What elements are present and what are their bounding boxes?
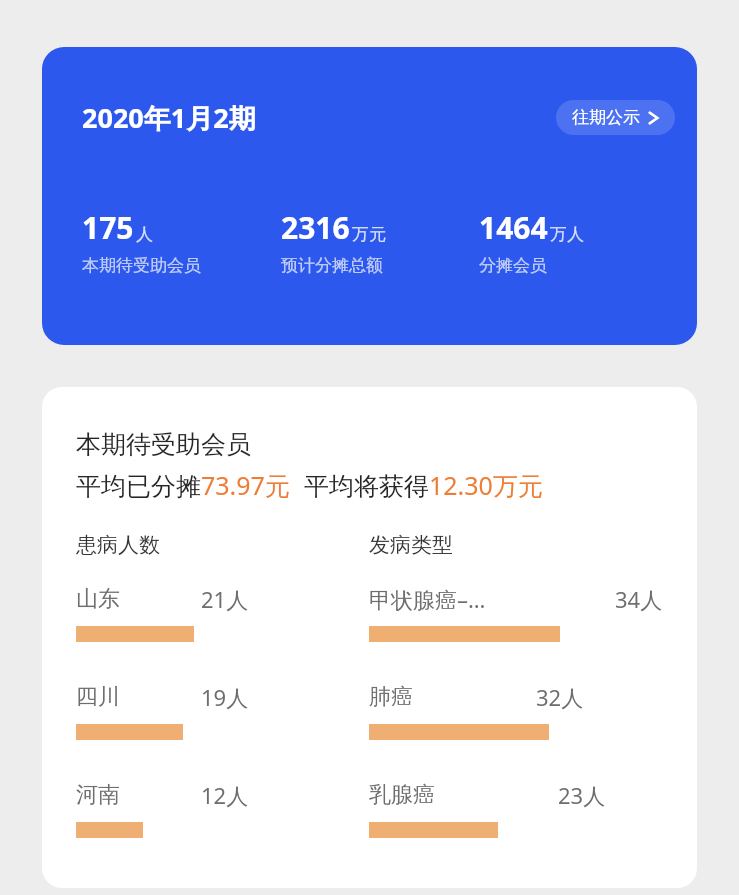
staticText: 平均将获得12.30万元 xyxy=(304,468,543,502)
staticText: 甲状腺癌–乳头... xyxy=(369,584,492,614)
button[interactable]: 四川 xyxy=(76,682,285,740)
staticText: 万元 xyxy=(352,224,386,245)
staticText: 12人 xyxy=(201,780,249,810)
staticText: 2316 xyxy=(281,207,350,248)
staticText: 人 xyxy=(136,224,153,245)
button[interactable]: 乳腺癌 xyxy=(369,780,663,838)
staticText: 1464 xyxy=(479,207,548,248)
staticText: 分摊会员 xyxy=(479,255,547,276)
staticText: 19人 xyxy=(201,682,249,712)
staticText: 平均已分摊73.97元 xyxy=(76,468,290,502)
staticText: 发病类型 xyxy=(369,532,663,558)
staticText: 本期待受助会员 xyxy=(82,255,201,276)
staticText: 肺癌 xyxy=(369,683,413,711)
staticText: 河南 xyxy=(76,781,120,809)
button[interactable]: 甲状腺癌–乳头... xyxy=(369,584,663,642)
staticText: 21人 xyxy=(201,584,249,614)
staticText: 患病人数 xyxy=(76,532,369,558)
staticText: 四川 xyxy=(76,683,120,711)
staticText: 乳腺癌 xyxy=(369,781,435,809)
button[interactable]: 山东 xyxy=(76,584,285,642)
staticText: 往期公示 xyxy=(572,107,640,128)
staticText: 175 xyxy=(82,207,134,248)
button[interactable]: 往期公示 xyxy=(556,100,675,135)
staticText: 32人 xyxy=(536,682,584,712)
staticText: 34人 xyxy=(615,584,663,614)
staticText: 2020年1月2期 xyxy=(82,99,256,136)
staticText: 本期待受助会员 xyxy=(76,429,251,460)
staticText: 预计分摊总额 xyxy=(281,255,383,276)
button[interactable]: 河南 xyxy=(76,780,285,838)
button[interactable]: 肺癌 xyxy=(369,682,663,740)
staticText: 23人 xyxy=(558,780,606,810)
staticText: 万人 xyxy=(550,224,584,245)
staticText: 山东 xyxy=(76,585,120,613)
